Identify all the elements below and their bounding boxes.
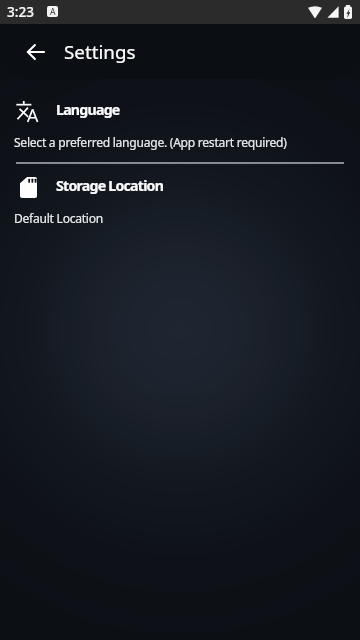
button[interactable]: Back xyxy=(16,32,56,72)
staticText: 3:23 xyxy=(7,2,35,21)
button[interactable]: Storage Location xyxy=(0,176,360,226)
staticText: Language xyxy=(56,100,120,119)
staticText: Storage Location xyxy=(56,176,164,195)
staticText: Default Location xyxy=(14,210,103,226)
button[interactable]: Language xyxy=(0,100,360,150)
staticText: Settings xyxy=(64,39,136,65)
staticText: A xyxy=(50,6,56,17)
staticText: Select a preferred language. (App restar… xyxy=(14,134,287,150)
